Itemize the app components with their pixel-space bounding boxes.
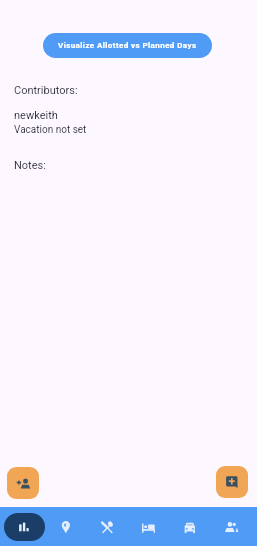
staticText: newkeith xyxy=(14,109,58,122)
staticText: Notes: xyxy=(14,159,46,172)
button[interactable]: Visualize Allotted vs Planned Days xyxy=(43,33,212,58)
button[interactable]: Hotels xyxy=(128,507,169,546)
button[interactable]: People xyxy=(210,507,251,546)
staticText: Contributors: xyxy=(14,84,78,97)
button[interactable]: Add note xyxy=(216,466,248,498)
button[interactable]: Places xyxy=(45,507,87,546)
staticText: Vacation not set xyxy=(14,124,87,136)
staticText: Visualize Allotted vs Planned Days xyxy=(58,41,197,50)
button[interactable]: Transport xyxy=(169,507,210,546)
button[interactable]: Restaurants xyxy=(87,507,128,546)
button[interactable]: Add contributor xyxy=(7,467,39,499)
button[interactable]: Statistics xyxy=(3,507,45,546)
